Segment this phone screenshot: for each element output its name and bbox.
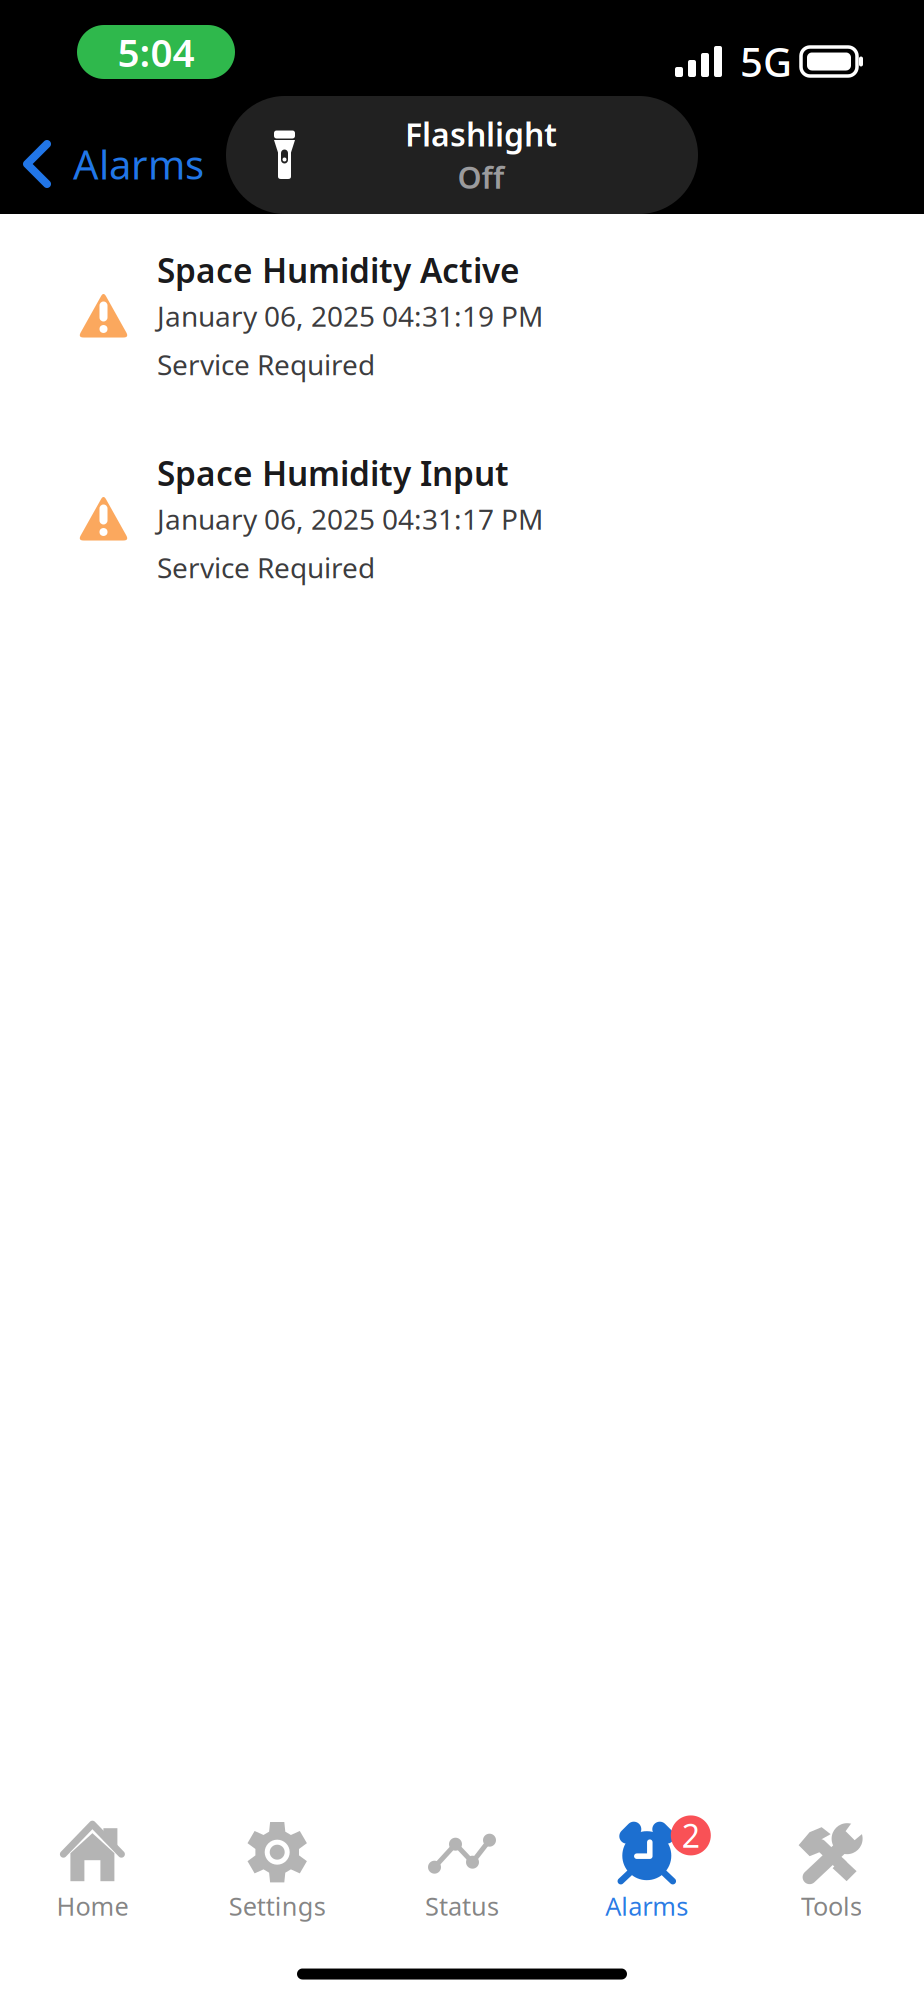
staticText: Service Required (157, 346, 375, 383)
staticText: Status (425, 1889, 499, 1923)
staticText: Off (457, 156, 504, 197)
staticText: January 06, 2025 04:31:17 PM (157, 500, 543, 538)
staticText: Tools (801, 1889, 862, 1923)
staticText: Home (56, 1889, 128, 1923)
button[interactable]: Home (0, 1819, 185, 1953)
staticText: Space Humidity Input (157, 451, 509, 495)
button[interactable]: Settings (185, 1819, 370, 1953)
staticText: Settings (229, 1889, 326, 1923)
staticText: Service Required (157, 549, 375, 586)
button[interactable]: 2 (554, 1819, 739, 1953)
button[interactable]: Alarms (0, 95, 212, 194)
button[interactable]: Space Humidity Active (0, 251, 924, 386)
staticText: 5G (740, 35, 792, 88)
button[interactable]: Status (370, 1819, 554, 1953)
button[interactable]: Tools (739, 1819, 924, 1953)
staticText: Alarms (73, 137, 204, 190)
staticText: Flashlight (405, 113, 557, 155)
button[interactable]: Space Humidity Input (0, 454, 924, 589)
staticText: 5:04 (117, 26, 194, 78)
staticText: 2 (682, 1814, 700, 1857)
staticText: Alarms (605, 1889, 688, 1923)
staticText: Space Humidity Active (157, 248, 520, 292)
staticText: January 06, 2025 04:31:19 PM (157, 297, 543, 335)
